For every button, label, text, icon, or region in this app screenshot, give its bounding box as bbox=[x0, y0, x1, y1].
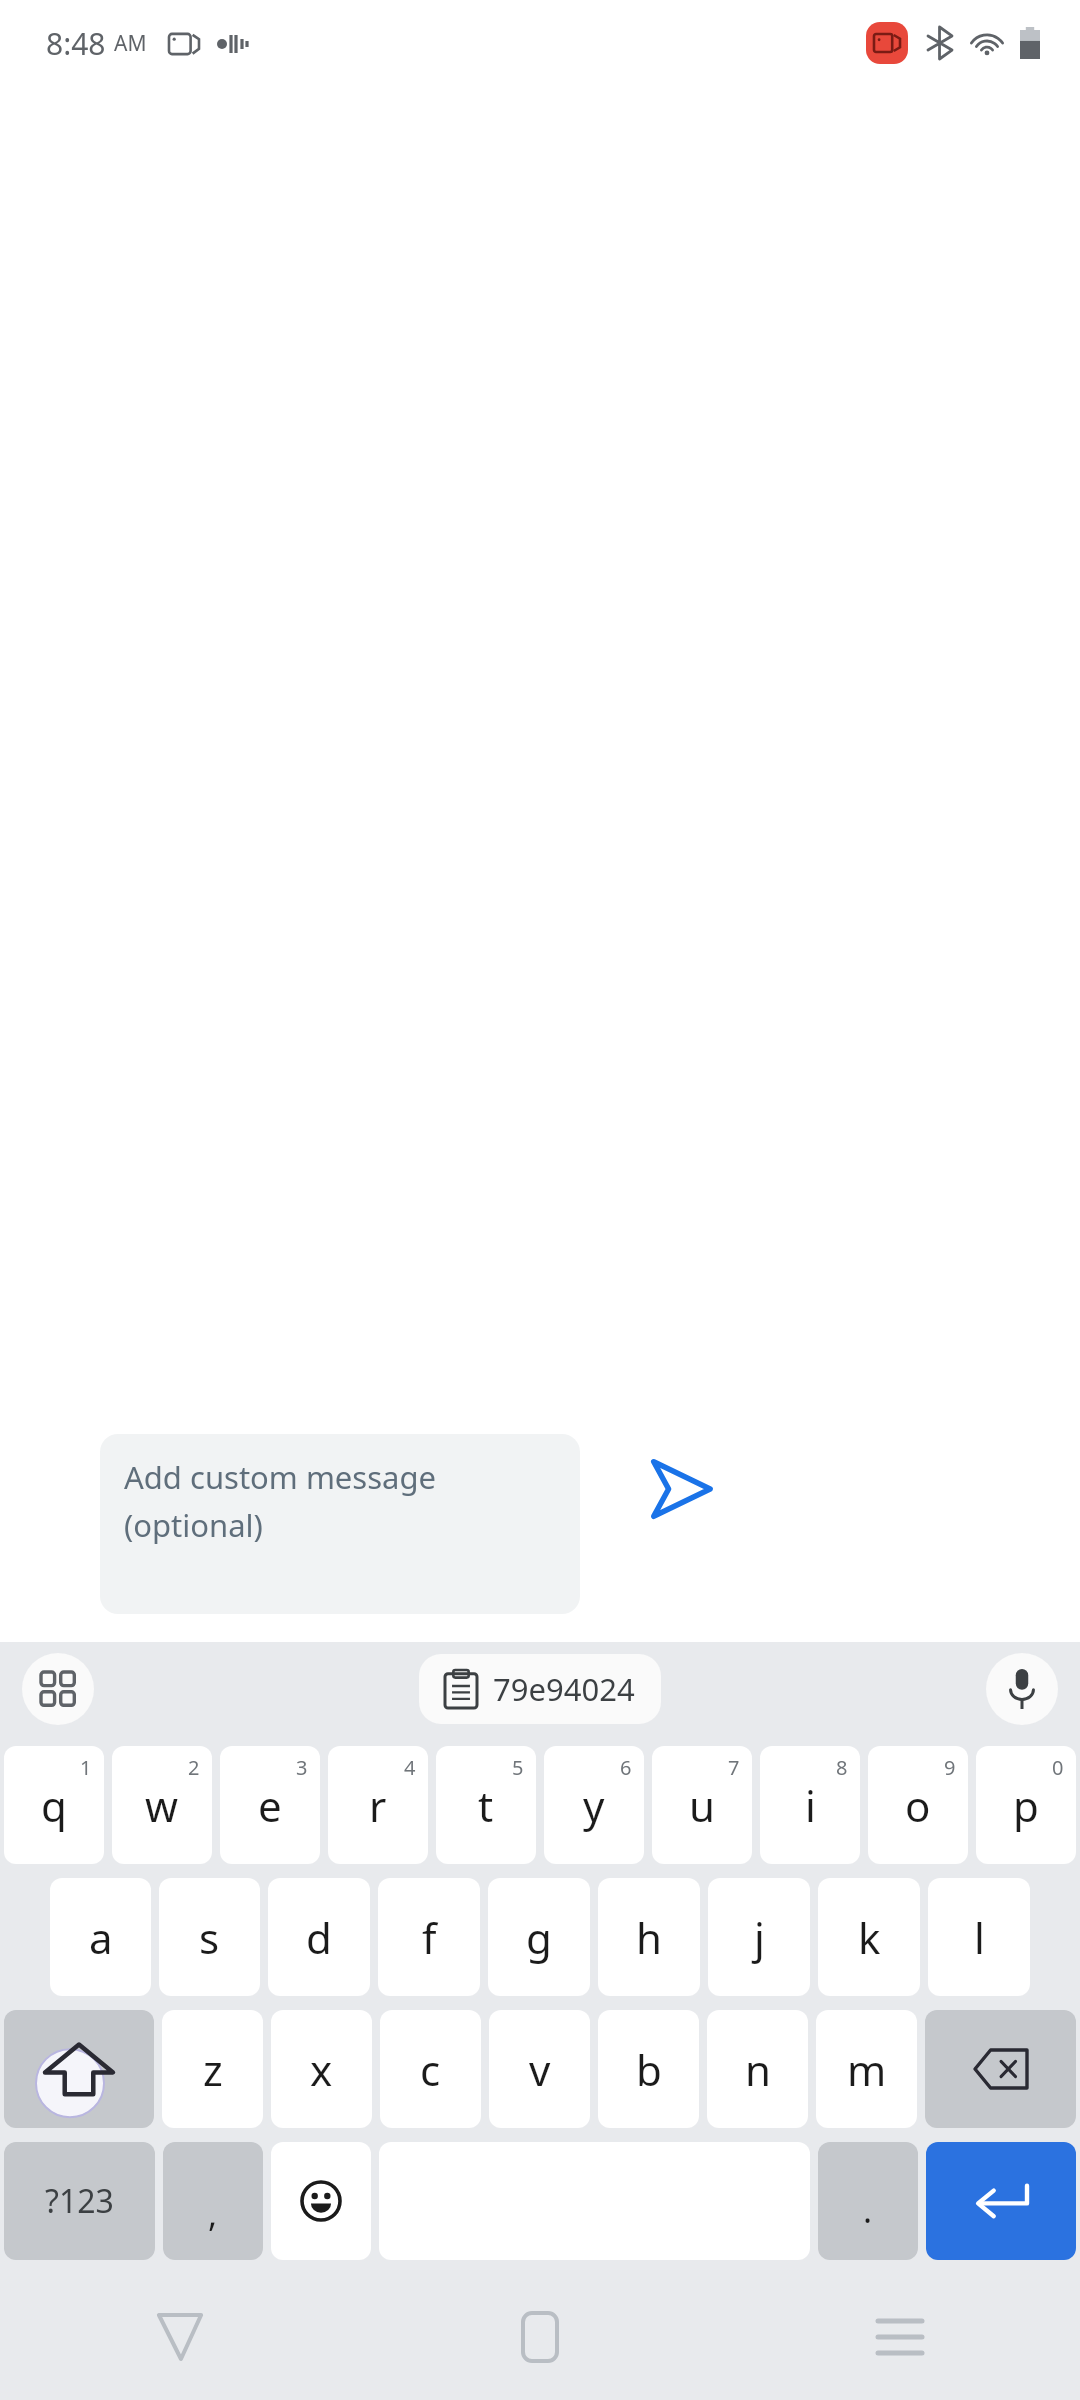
staticText: d bbox=[306, 1909, 332, 1966]
staticText: 0 bbox=[1052, 1754, 1064, 1781]
staticText: 1 bbox=[80, 1754, 92, 1781]
staticText: Add custom message (optional) bbox=[124, 1456, 436, 1546]
staticText: u bbox=[689, 1777, 715, 1834]
button[interactable]: t bbox=[436, 1746, 536, 1864]
staticText: 9 bbox=[944, 1754, 956, 1781]
button[interactable]: w bbox=[112, 1746, 212, 1864]
staticText: b bbox=[636, 2041, 662, 2098]
staticText: p bbox=[1013, 1777, 1039, 1834]
staticText: s bbox=[199, 1909, 220, 1966]
button[interactable]: k bbox=[818, 1878, 920, 1996]
button[interactable]: a bbox=[50, 1878, 151, 1996]
staticText: t bbox=[478, 1777, 494, 1834]
button[interactable]: h bbox=[598, 1878, 700, 1996]
staticText: n bbox=[745, 2041, 771, 2098]
button[interactable]: i bbox=[760, 1746, 860, 1864]
button[interactable]: Shift bbox=[4, 2010, 154, 2128]
staticText: g bbox=[526, 1909, 552, 1966]
button[interactable]: m bbox=[816, 2010, 917, 2128]
staticText: 3 bbox=[296, 1754, 308, 1781]
staticText: AM bbox=[114, 29, 147, 58]
staticText: 79e94024 bbox=[493, 1668, 635, 1710]
staticText: q bbox=[41, 1777, 67, 1834]
button[interactable]: c bbox=[380, 2010, 481, 2128]
staticText: ?123 bbox=[45, 2179, 114, 2223]
staticText: l bbox=[974, 1909, 985, 1966]
button[interactable]: e bbox=[220, 1746, 320, 1864]
button[interactable]: Home bbox=[360, 2274, 720, 2400]
staticText: m bbox=[847, 2041, 887, 2098]
staticText: f bbox=[422, 1909, 437, 1966]
button[interactable]: r bbox=[328, 1746, 428, 1864]
staticText: o bbox=[905, 1777, 931, 1834]
button[interactable]: , bbox=[163, 2142, 263, 2260]
button[interactable]: Back bbox=[0, 2274, 360, 2400]
button[interactable]: Enter bbox=[926, 2142, 1076, 2260]
staticText: w bbox=[145, 1777, 179, 1834]
staticText: j bbox=[754, 1909, 765, 1966]
staticText: i bbox=[805, 1777, 816, 1834]
staticText: a bbox=[89, 1909, 113, 1966]
staticText: y bbox=[583, 1777, 605, 1834]
button[interactable]: g bbox=[488, 1878, 590, 1996]
button[interactable]: f bbox=[378, 1878, 480, 1996]
staticText: 7 bbox=[728, 1754, 740, 1781]
button[interactable]: j bbox=[708, 1878, 810, 1996]
staticText: 2 bbox=[188, 1754, 200, 1781]
button[interactable]: . bbox=[818, 2142, 918, 2260]
button[interactable]: Add custom message (optional) bbox=[100, 1434, 580, 1614]
staticText: e bbox=[258, 1777, 282, 1834]
staticText: k bbox=[858, 1909, 881, 1966]
button[interactable]: u bbox=[652, 1746, 752, 1864]
staticText: 8 bbox=[836, 1754, 848, 1781]
button[interactable]: Recents bbox=[720, 2274, 1080, 2400]
staticText: c bbox=[420, 2041, 441, 2098]
button[interactable]: Toolbar bbox=[22, 1653, 94, 1725]
button[interactable]: n bbox=[707, 2010, 808, 2128]
button[interactable]: s bbox=[159, 1878, 260, 1996]
button[interactable]: l bbox=[928, 1878, 1030, 1996]
button[interactable]: q bbox=[4, 1746, 104, 1864]
staticText: v bbox=[529, 2041, 551, 2098]
button[interactable]: Voice input bbox=[986, 1653, 1058, 1725]
staticText: 4 bbox=[404, 1754, 416, 1781]
button[interactable]: p bbox=[976, 1746, 1076, 1864]
button[interactable]: z bbox=[162, 2010, 263, 2128]
staticText: h bbox=[636, 1909, 662, 1966]
staticText: 5 bbox=[512, 1754, 524, 1781]
staticText: , bbox=[208, 2191, 218, 2237]
button[interactable]: d bbox=[268, 1878, 370, 1996]
button[interactable]: Emoji bbox=[271, 2142, 371, 2260]
staticText: . bbox=[863, 2187, 873, 2233]
button[interactable]: o bbox=[868, 1746, 968, 1864]
staticText: 8:48 bbox=[46, 23, 106, 64]
button[interactable]: Send bbox=[626, 1434, 736, 1544]
staticText: r bbox=[369, 1777, 387, 1834]
button[interactable]: ?123 bbox=[4, 2142, 155, 2260]
button[interactable]: y bbox=[544, 1746, 644, 1864]
button[interactable]: v bbox=[489, 2010, 590, 2128]
staticText: 6 bbox=[620, 1754, 632, 1781]
button[interactable]: 79e94024 bbox=[419, 1654, 661, 1724]
staticText: z bbox=[203, 2041, 223, 2098]
button[interactable]: Backspace bbox=[925, 2010, 1076, 2128]
staticText: x bbox=[310, 2041, 333, 2098]
button[interactable]: b bbox=[598, 2010, 699, 2128]
button[interactable]: x bbox=[271, 2010, 372, 2128]
